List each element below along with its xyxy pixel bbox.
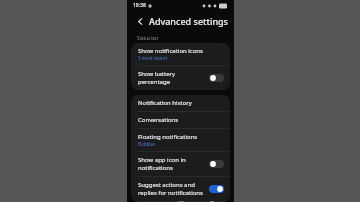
button[interactable]: Floating notifications [131,129,230,151]
staticText: Notification history [138,99,192,107]
button[interactable]: Back [133,14,147,28]
staticText: 10:38 [133,2,146,9]
staticText: Show notification icons [138,47,203,55]
button[interactable]: Suggest actions and replies for notifica… [131,177,230,201]
button[interactable]: Conversations [131,112,230,128]
button[interactable]: Notification history [131,95,230,111]
staticText: 3 most recent [138,55,168,61]
staticText: Conversations [138,116,179,124]
staticText: Status bar [137,35,159,41]
staticText: Floating notifications [138,133,198,141]
button[interactable]: Show battery percentage [131,66,230,90]
staticText: Advanced settings [149,15,228,27]
staticText: Bubbles [138,141,156,147]
button[interactable]: Show notification icons [131,43,230,65]
staticText: Show battery percentage [138,70,205,86]
staticText: Suggest actions and replies for notifica… [138,181,205,197]
button[interactable]: Show app icon in notifications [131,152,230,176]
staticText: Show app icon in notifications [138,156,205,172]
